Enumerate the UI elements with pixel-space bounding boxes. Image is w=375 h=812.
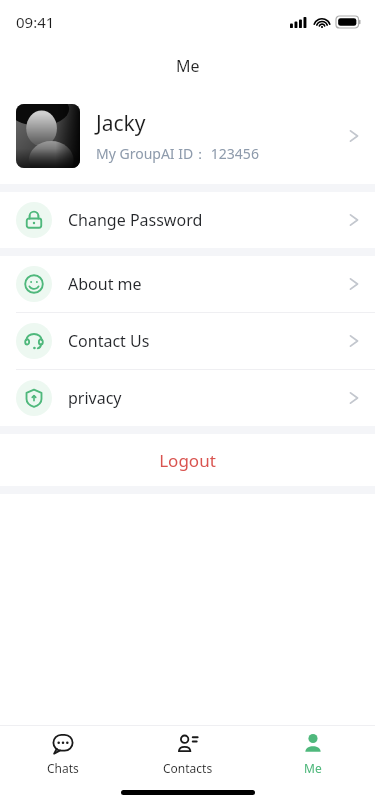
- staticText: privacy: [68, 387, 349, 409]
- button[interactable]: Me: [250, 726, 375, 782]
- button[interactable]: privacy: [0, 370, 375, 426]
- staticText: My GroupAI ID： 123456: [96, 144, 259, 163]
- button[interactable]: Contacts: [125, 726, 250, 782]
- button[interactable]: About me: [0, 256, 375, 312]
- button[interactable]: Logout: [0, 434, 375, 486]
- button[interactable]: Contact Us: [0, 313, 375, 369]
- staticText: About me: [68, 273, 349, 295]
- staticText: 09:41: [16, 12, 55, 32]
- button[interactable]: Change Password: [0, 192, 375, 248]
- staticText: Chats: [47, 760, 79, 776]
- staticText: Change Password: [68, 209, 349, 231]
- staticText: Logout: [159, 449, 216, 472]
- button[interactable]: Chats: [0, 726, 125, 782]
- staticText: Contacts: [163, 760, 213, 776]
- staticText: Me: [176, 55, 200, 77]
- staticText: Contact Us: [68, 330, 349, 352]
- button[interactable]: Jacky: [0, 88, 375, 184]
- staticText: Jacky: [96, 109, 146, 138]
- staticText: Me: [304, 760, 322, 776]
